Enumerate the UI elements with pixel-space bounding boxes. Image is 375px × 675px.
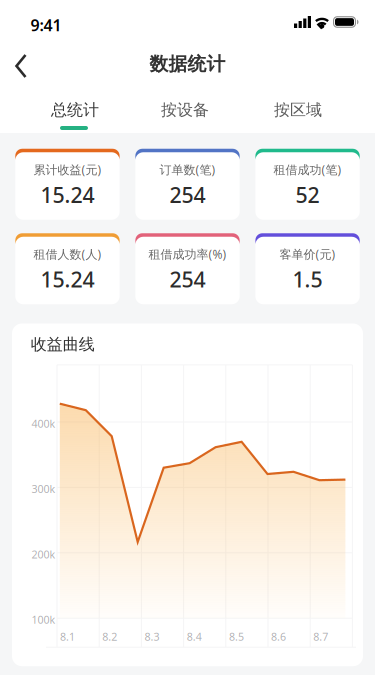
staticText: 按设备 [161, 100, 209, 120]
staticText: 15.24 [40, 180, 94, 209]
staticText: 200k [31, 547, 55, 561]
staticText: 租借成功(笔) [274, 162, 342, 177]
staticText: 15.24 [40, 265, 94, 293]
staticText: 8.1 [60, 630, 75, 644]
staticText: 9:41 [30, 14, 61, 36]
staticText: 8.5 [229, 630, 244, 644]
button[interactable]: 总统计 [30, 90, 120, 130]
staticText: 8.2 [102, 630, 117, 644]
button[interactable]: 按区域 [253, 90, 343, 130]
staticText: 254 [169, 265, 205, 293]
staticText: 400k [31, 416, 55, 431]
staticText: 100k [31, 613, 55, 627]
staticText: 按区域 [274, 100, 322, 120]
staticText: 1.5 [293, 265, 323, 293]
staticText: 8.3 [144, 630, 159, 644]
staticText: 总统计 [51, 100, 99, 120]
staticText: 收益曲线 [31, 335, 95, 354]
button[interactable]: 按设备 [140, 90, 230, 130]
staticText: 订单数(笔) [159, 162, 215, 177]
staticText: 52 [296, 180, 320, 209]
staticText: 租借成功率(%) [148, 246, 226, 262]
button[interactable]: Back [0, 44, 44, 88]
staticText: 8.4 [187, 630, 202, 644]
staticText: 数据统计 [149, 52, 225, 75]
staticText: 累计收益(元) [33, 162, 101, 177]
staticText: 8.7 [313, 630, 328, 644]
staticText: 8.6 [271, 630, 286, 644]
staticText: 254 [169, 180, 205, 209]
staticText: 300k [31, 482, 55, 496]
staticText: 客单价(元) [280, 246, 336, 262]
staticText: 租借人数(人) [33, 246, 101, 262]
